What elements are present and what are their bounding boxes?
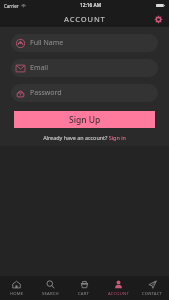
button[interactable]: SEARCH — [33, 276, 67, 300]
staticText: ACCOUNT — [108, 291, 129, 297]
button[interactable]: Sign Up — [14, 111, 155, 128]
staticText: Carrier — [4, 3, 19, 9]
staticText: Sign Up — [69, 114, 101, 126]
button[interactable]: HOME — [0, 276, 33, 300]
button[interactable]: ACCOUNT — [101, 276, 135, 300]
staticText: HOME — [10, 291, 24, 297]
button[interactable]: Settings — [152, 13, 165, 26]
staticText: Password — [30, 88, 62, 98]
button[interactable]: CONTACT — [135, 276, 169, 300]
staticText: SEARCH — [42, 291, 59, 297]
button[interactable]: CART — [67, 276, 101, 300]
staticText: Email — [30, 63, 48, 73]
staticText: ACCOUNT — [64, 14, 106, 24]
staticText: 12:16 AM — [80, 2, 102, 9]
staticText: CART — [78, 291, 90, 297]
staticText: Full Name — [30, 38, 64, 48]
button[interactable]: Full Name — [11, 34, 158, 52]
staticText: Already have an account? Sign in — [43, 134, 126, 141]
button[interactable]: Password — [11, 84, 158, 102]
button[interactable]: Already have an account? Sign in — [11, 134, 158, 141]
staticText: CONTACT — [142, 291, 163, 297]
button[interactable]: Email — [11, 59, 158, 77]
